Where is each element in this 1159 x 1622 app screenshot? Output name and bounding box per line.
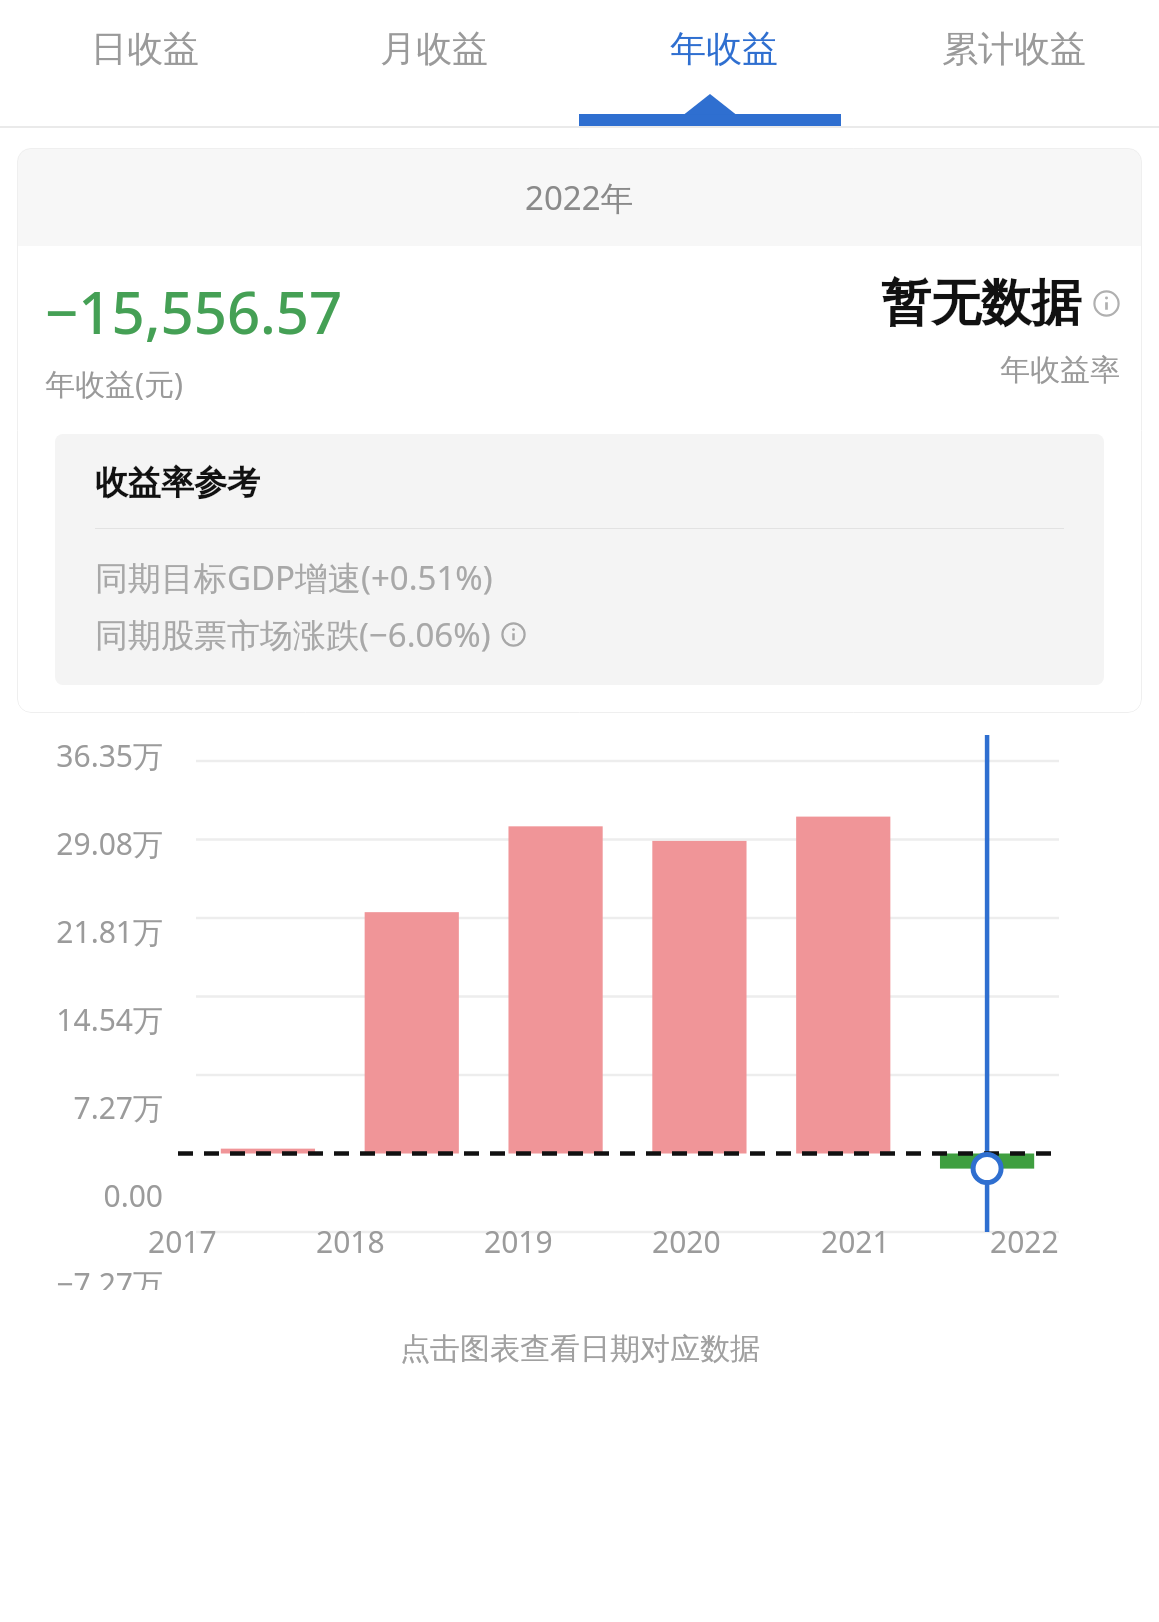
staticText: 2022年	[525, 175, 634, 220]
staticText: −15,556.57	[45, 272, 343, 351]
button[interactable]: 年收益率说明	[1093, 290, 1120, 317]
staticText: 同期股票市场涨跌(−6.06%)	[95, 612, 491, 657]
staticText: 累计收益	[942, 26, 1086, 71]
staticText: 21.81万	[0, 911, 163, 952]
staticText: 14.54万	[0, 999, 163, 1040]
staticText: 0.00	[0, 1175, 163, 1216]
staticText: 年收益	[670, 26, 778, 71]
staticText: 同期目标GDP增速(+0.51%)	[95, 555, 493, 600]
staticText: 收益率参考	[95, 462, 260, 504]
staticText: 2017	[148, 1221, 217, 1262]
button[interactable]: 36.35万	[0, 735, 1159, 1290]
button[interactable]: 月收益	[289, 0, 579, 128]
staticText: 月收益	[380, 26, 488, 71]
button[interactable]: 股票市场涨跌说明	[501, 622, 526, 647]
staticText: 点击图表查看日期对应数据	[400, 1330, 760, 1368]
staticText: 2022	[990, 1221, 1059, 1262]
staticText: 年收益率	[1000, 351, 1120, 389]
button[interactable]: 累计收益	[869, 0, 1159, 128]
button[interactable]: 年收益	[579, 0, 869, 128]
staticText: 36.35万	[0, 735, 163, 776]
staticText: 2018	[316, 1221, 385, 1262]
staticText: 2021	[821, 1221, 890, 1262]
staticText: 2019	[484, 1221, 553, 1262]
staticText: 日收益	[91, 26, 199, 71]
staticText: 年收益(元)	[45, 363, 183, 404]
staticText: 7.27万	[0, 1087, 163, 1128]
staticText: 暂无数据	[881, 272, 1081, 335]
button[interactable]: 日收益	[0, 0, 289, 128]
staticText: 2020	[652, 1221, 721, 1262]
staticText: 29.08万	[0, 823, 163, 864]
staticText: −7.27万	[0, 1263, 163, 1290]
